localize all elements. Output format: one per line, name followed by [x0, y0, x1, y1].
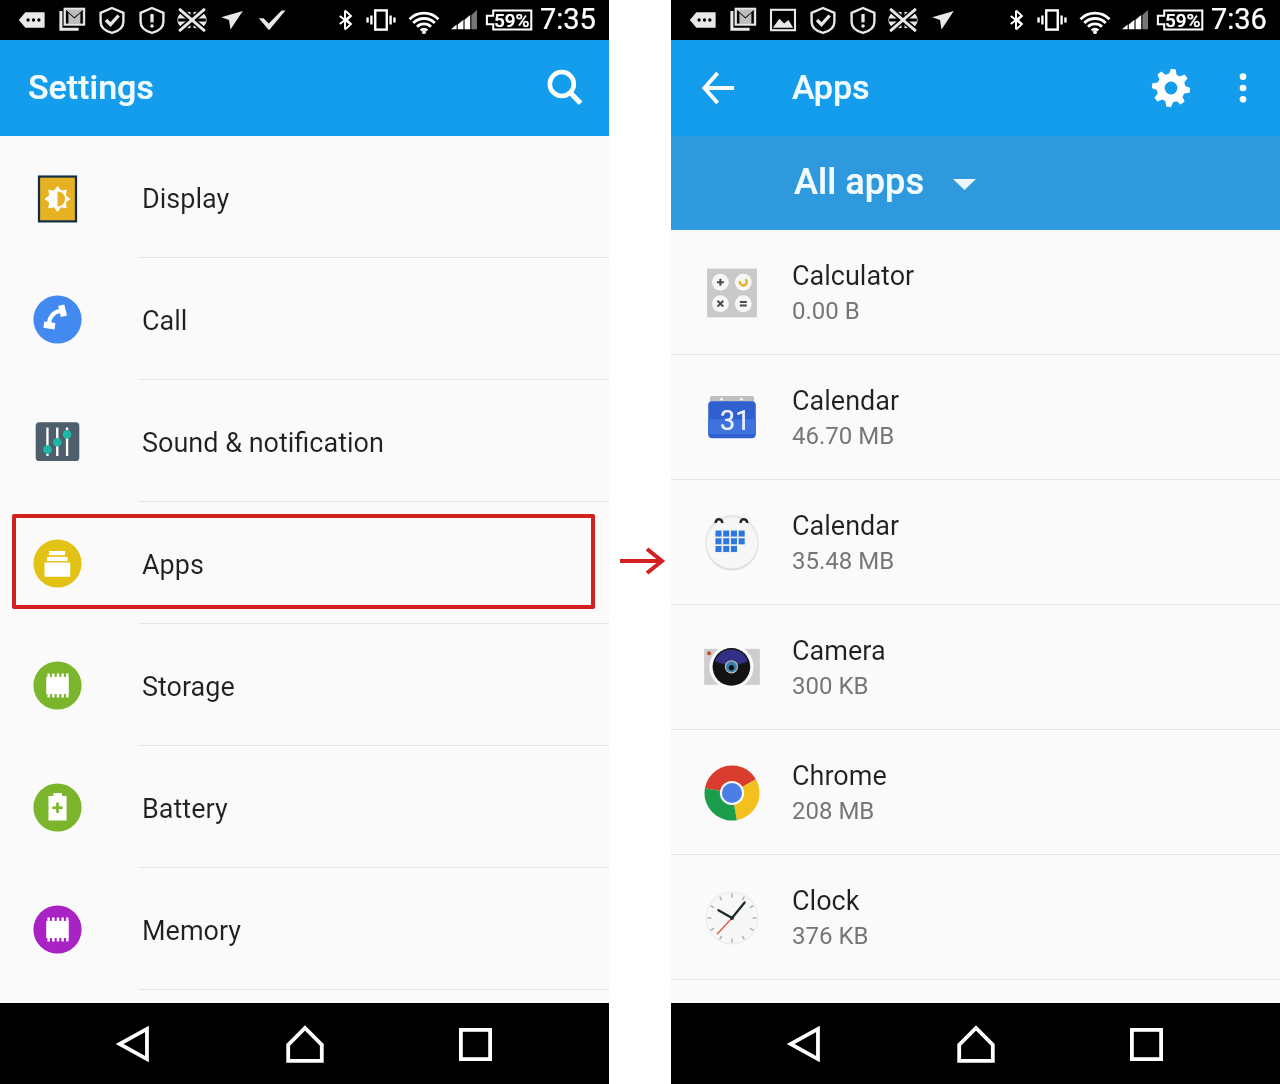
staticText: Sound & notification: [142, 427, 384, 459]
staticText: Calendar: [792, 510, 900, 542]
button[interactable]: Display: [0, 136, 609, 258]
button[interactable]: Clock: [671, 855, 1280, 980]
staticText: Camera: [792, 635, 886, 667]
button[interactable]: Apps: [0, 502, 609, 624]
button[interactable]: Calculator: [671, 230, 1280, 355]
button[interactable]: Chrome: [671, 730, 1280, 855]
staticText: 31: [720, 405, 751, 437]
staticText: 7:36: [1211, 2, 1267, 36]
button[interactable]: Back: [769, 1008, 841, 1080]
button[interactable]: Battery: [0, 746, 609, 868]
button[interactable]: Home: [269, 1008, 341, 1080]
staticText: Clock: [792, 885, 860, 917]
staticText: Apps: [792, 67, 870, 107]
staticText: Call: [142, 305, 188, 337]
staticText: Storage: [142, 671, 235, 703]
staticText: 46.70 MB: [792, 422, 895, 450]
button[interactable]: Recents: [1110, 1008, 1182, 1080]
button[interactable]: Calendar: [671, 480, 1280, 605]
button[interactable]: Camera: [671, 605, 1280, 730]
staticText: Chrome: [792, 760, 887, 792]
button[interactable]: Back: [98, 1008, 170, 1080]
staticText: 59%: [494, 9, 530, 31]
staticText: Memory: [142, 915, 242, 947]
button[interactable]: Back: [688, 57, 750, 119]
staticText: Settings: [28, 67, 154, 107]
button[interactable]: Call: [0, 258, 609, 380]
staticText: 300 KB: [792, 672, 869, 700]
staticText: Display: [142, 183, 230, 215]
button[interactable]: Sound & notification: [0, 380, 609, 502]
staticText: Calendar: [792, 385, 900, 417]
button[interactable]: More options: [1212, 57, 1274, 119]
staticText: All apps: [794, 161, 924, 203]
button[interactable]: Settings: [1140, 57, 1202, 119]
button[interactable]: 31: [671, 355, 1280, 480]
staticText: 59%: [1165, 9, 1201, 31]
button[interactable]: Search: [534, 57, 596, 119]
button[interactable]: Home: [940, 1008, 1012, 1080]
staticText: Apps: [142, 549, 204, 581]
staticText: 7:35: [540, 2, 596, 36]
staticText: Battery: [142, 793, 228, 825]
button[interactable]: All apps: [671, 136, 1280, 230]
staticText: 208 MB: [792, 797, 875, 825]
button[interactable]: Recents: [439, 1008, 511, 1080]
staticText: Calculator: [792, 260, 915, 292]
button[interactable]: Storage: [0, 624, 609, 746]
button[interactable]: Memory: [0, 868, 609, 990]
staticText: 376 KB: [792, 922, 869, 950]
staticText: 0.00 B: [792, 297, 860, 325]
staticText: 35.48 MB: [792, 547, 895, 575]
